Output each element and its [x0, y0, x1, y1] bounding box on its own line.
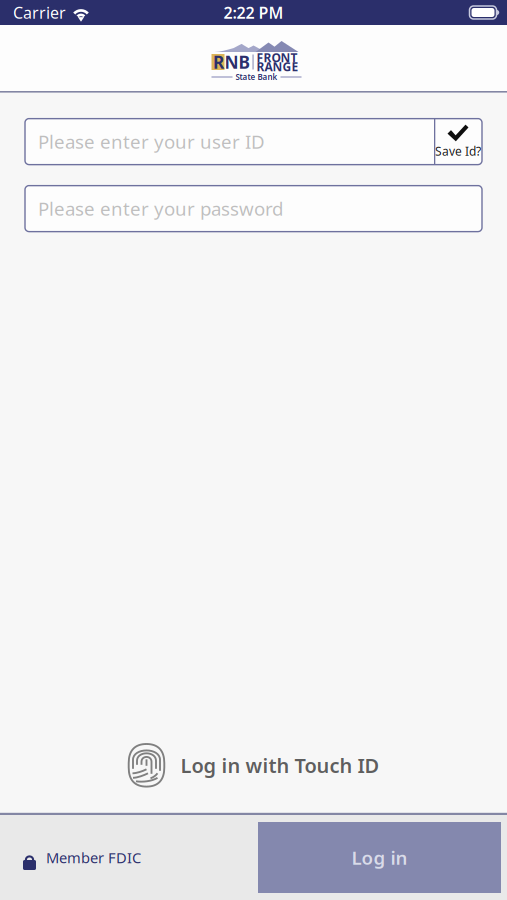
staticText: Carrier	[13, 2, 66, 23]
button[interactable]: Log in with Touch ID	[0, 733, 507, 798]
staticText: Member FDIC	[46, 848, 141, 867]
button[interactable]: Log in	[258, 822, 501, 893]
staticText: 2:22 PM	[223, 2, 283, 23]
staticText: Log in with Touch ID	[180, 752, 379, 779]
button[interactable]: Save ID	[434, 119, 482, 165]
staticText: FRONT	[257, 49, 298, 65]
staticText: Please enter your user ID	[38, 129, 265, 154]
staticText: Log in	[351, 845, 407, 870]
staticText: NB	[224, 50, 250, 73]
staticText: State Bank	[235, 72, 277, 82]
staticText: R	[213, 50, 224, 73]
button[interactable]: Member FDIC	[0, 815, 258, 900]
staticText: Save Id?	[435, 143, 481, 159]
staticText: Please enter your password	[38, 196, 283, 221]
staticText: RANGE	[257, 58, 299, 74]
